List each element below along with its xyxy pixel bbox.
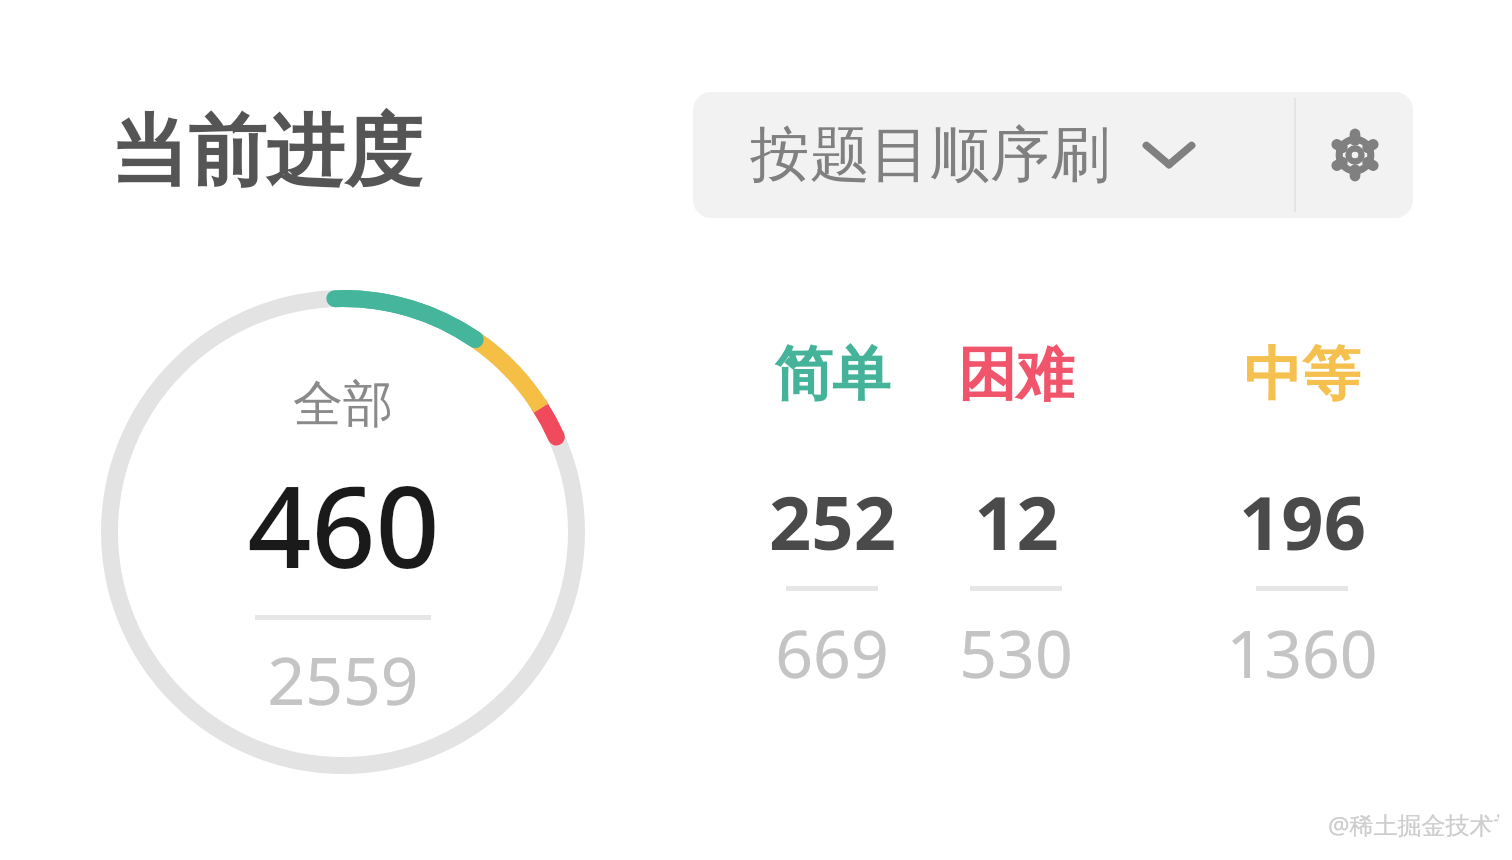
staticText: 当前进度 xyxy=(110,103,422,201)
button[interactable]: 按题目顺序刷 xyxy=(693,92,1285,218)
button[interactable]: 中等 xyxy=(1152,338,1452,728)
staticText: 困难 xyxy=(958,338,1074,411)
staticText: 12 xyxy=(974,471,1059,572)
button[interactable]: Settings xyxy=(1296,92,1413,218)
staticText: 196 xyxy=(1239,471,1366,572)
staticText: 按题目顺序刷 xyxy=(750,117,1110,193)
button[interactable] xyxy=(98,287,588,777)
staticText: 252 xyxy=(769,471,896,572)
staticText: 中等 xyxy=(1244,338,1360,411)
staticText: @稀土掘金技术社区 xyxy=(1328,808,1500,840)
button[interactable]: 当前进度 xyxy=(110,103,422,201)
staticText: 1360 xyxy=(1226,607,1378,697)
button[interactable]: 简单 xyxy=(682,338,982,728)
staticText: 全部 xyxy=(293,373,393,436)
staticText: 669 xyxy=(775,607,889,697)
staticText: 530 xyxy=(959,607,1073,697)
staticText: 简单 xyxy=(774,338,890,411)
staticText: 460 xyxy=(247,448,440,601)
staticText: 2559 xyxy=(267,634,419,724)
button[interactable]: 困难 xyxy=(866,338,1166,728)
